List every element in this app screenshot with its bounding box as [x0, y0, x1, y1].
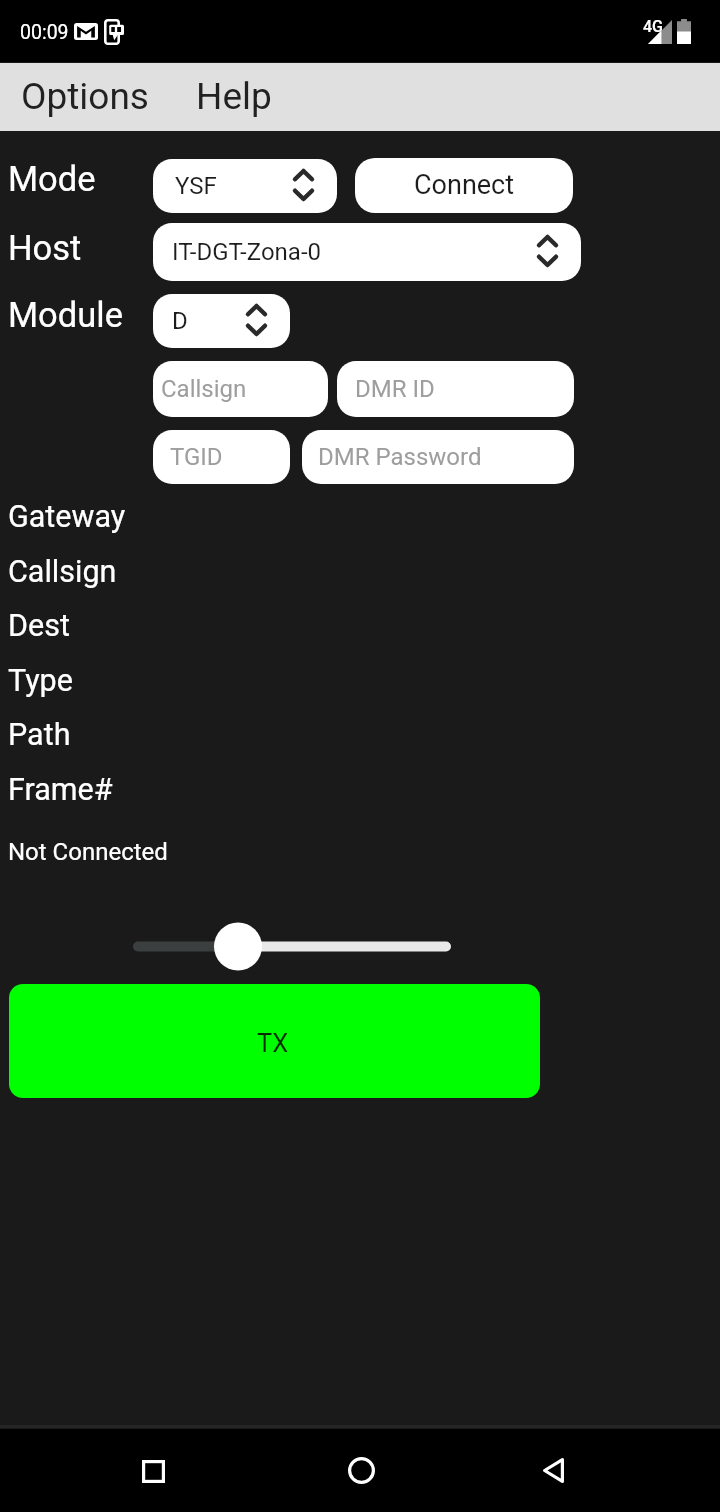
button[interactable]: Home	[321, 1430, 401, 1510]
staticText: YSF	[175, 172, 217, 200]
staticText: IT-DGT-Zona-0	[172, 238, 322, 266]
staticText: Mode	[8, 159, 96, 199]
staticText: Type	[8, 663, 73, 699]
button[interactable]: Recent apps	[113, 1431, 193, 1511]
staticText: Host	[8, 228, 82, 268]
staticText: D	[172, 307, 188, 335]
staticText: Callsign	[8, 554, 117, 590]
staticText: Connect	[414, 169, 515, 201]
button[interactable]: DMR ID	[337, 361, 574, 417]
staticText: Dest	[8, 608, 70, 644]
staticText: Module	[8, 295, 123, 335]
button[interactable]: Level	[110, 916, 480, 976]
staticText: Options	[21, 75, 149, 118]
staticText: Help	[196, 75, 272, 118]
button[interactable]: TGID	[153, 430, 290, 484]
button[interactable]: Options	[4, 63, 162, 131]
button[interactable]: IT-DGT-Zona-0	[153, 223, 581, 281]
staticText: DMR Password	[318, 443, 482, 471]
staticText: 4G	[643, 17, 663, 36]
staticText: 00:09	[20, 21, 69, 44]
staticText: Path	[8, 717, 71, 753]
button[interactable]: YSF	[153, 159, 337, 213]
button[interactable]: Connect	[355, 158, 573, 213]
staticText: DMR ID	[355, 375, 435, 403]
button[interactable]: Callsign	[153, 361, 328, 417]
staticText: Frame#	[8, 772, 113, 808]
button[interactable]: TX	[9, 984, 540, 1098]
button[interactable]: DMR Password	[302, 430, 574, 484]
staticText: Gateway	[8, 499, 126, 535]
button[interactable]: Back	[513, 1430, 593, 1510]
staticText: TGID	[170, 443, 223, 471]
staticText: Not Connected	[8, 838, 168, 866]
staticText: Callsign	[161, 375, 247, 403]
staticText: TX	[257, 1028, 289, 1058]
button[interactable]: Help	[179, 63, 284, 131]
button[interactable]: D	[153, 294, 290, 348]
